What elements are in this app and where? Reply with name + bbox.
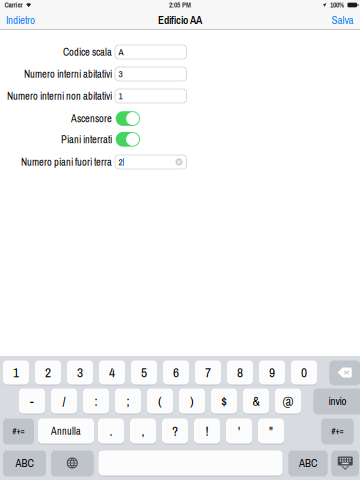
button[interactable]: Salva bbox=[323, 10, 360, 30]
button[interactable]: : bbox=[83, 388, 109, 414]
staticText: A bbox=[118, 46, 123, 58]
staticText: - bbox=[30, 392, 34, 410]
staticText: 9 bbox=[269, 363, 275, 381]
staticText: , bbox=[141, 422, 144, 440]
button[interactable] bbox=[98, 450, 282, 476]
button[interactable]: Indietro bbox=[0, 10, 43, 30]
staticText: Numero interni abitativi bbox=[24, 67, 112, 81]
staticText: invio bbox=[328, 394, 346, 408]
button[interactable]: 0 bbox=[291, 360, 317, 385]
button[interactable]: invio bbox=[313, 388, 360, 414]
staticText: 4 bbox=[109, 363, 115, 381]
staticText: Indietro bbox=[6, 13, 35, 27]
button[interactable]: ; bbox=[115, 388, 141, 414]
staticText: ! bbox=[205, 422, 208, 440]
staticText: 1 bbox=[13, 363, 19, 381]
button[interactable]: & bbox=[243, 388, 269, 414]
staticText: Edificio AA bbox=[158, 13, 202, 27]
staticText: ( bbox=[158, 392, 162, 410]
button[interactable]: 9 bbox=[259, 360, 285, 385]
staticText: #+= bbox=[331, 425, 343, 437]
button[interactable]: ( bbox=[147, 388, 173, 414]
button[interactable]: 2 bbox=[35, 360, 61, 385]
staticText: 100% bbox=[330, 0, 344, 10]
button[interactable]: 7 bbox=[195, 360, 221, 385]
staticText: / bbox=[62, 392, 65, 410]
staticText: ) bbox=[190, 392, 194, 410]
staticText: 1 bbox=[118, 90, 122, 102]
button[interactable]: Ascensore bbox=[116, 111, 140, 126]
button[interactable]: 6 bbox=[163, 360, 189, 385]
staticText: ABC bbox=[15, 456, 33, 470]
button[interactable]: @ bbox=[275, 388, 301, 414]
button[interactable]: 4 bbox=[99, 360, 125, 385]
button[interactable]: 1 bbox=[3, 360, 29, 385]
button[interactable]: 8 bbox=[227, 360, 253, 385]
staticText: ; bbox=[126, 392, 129, 410]
button[interactable]: Next keyboard bbox=[51, 450, 93, 476]
button[interactable]: ' bbox=[226, 418, 252, 444]
staticText: Codice scala bbox=[63, 45, 112, 59]
button[interactable]: Annulla bbox=[38, 418, 94, 444]
button[interactable]: $ bbox=[211, 388, 237, 414]
button[interactable]: Piani interrati bbox=[116, 132, 140, 147]
button[interactable]: - bbox=[19, 388, 45, 414]
staticText: : bbox=[94, 392, 97, 410]
button[interactable]: / bbox=[51, 388, 77, 414]
button[interactable]: ABC bbox=[288, 450, 327, 476]
button[interactable]: ? bbox=[162, 418, 188, 444]
staticText: Annulla bbox=[51, 424, 81, 438]
staticText: & bbox=[252, 392, 259, 410]
staticText: . bbox=[109, 422, 112, 440]
staticText: 6 bbox=[173, 363, 179, 381]
button[interactable]: ) bbox=[179, 388, 205, 414]
staticText: 3 bbox=[77, 363, 83, 381]
staticText: 2 bbox=[45, 363, 51, 381]
button[interactable]: . bbox=[98, 418, 124, 444]
button[interactable]: 3 bbox=[67, 360, 93, 385]
staticText: 8 bbox=[237, 363, 243, 381]
staticText: 2:05 PM bbox=[169, 0, 191, 10]
staticText: Salva bbox=[331, 13, 353, 27]
staticText: ' bbox=[238, 422, 240, 440]
button[interactable]: #+= bbox=[3, 418, 34, 444]
staticText: 3 bbox=[118, 68, 122, 80]
staticText: Carrier bbox=[4, 0, 22, 10]
staticText: 2 bbox=[118, 156, 122, 168]
button[interactable]: " bbox=[258, 418, 284, 444]
staticText: Numero piani fuori terra bbox=[21, 155, 112, 169]
staticText: Numero interni non abitativi bbox=[7, 89, 112, 103]
button[interactable]: #+= bbox=[321, 418, 353, 444]
staticText: #+= bbox=[12, 425, 24, 437]
staticText: @ bbox=[282, 392, 293, 410]
button[interactable]: ABC bbox=[3, 450, 46, 476]
staticText: $ bbox=[221, 392, 227, 410]
staticText: ? bbox=[172, 422, 178, 440]
button[interactable]: Delete bbox=[329, 360, 360, 385]
button[interactable]: , bbox=[130, 418, 156, 444]
staticText: 5 bbox=[141, 363, 147, 381]
staticText: ABC bbox=[299, 456, 317, 470]
staticText: 7 bbox=[205, 363, 211, 381]
staticText: " bbox=[269, 422, 273, 440]
button[interactable]: 5 bbox=[131, 360, 157, 385]
staticText: 0 bbox=[301, 363, 307, 381]
button[interactable]: Hide keyboard bbox=[331, 450, 359, 476]
staticText: Ascensore bbox=[71, 111, 112, 125]
button[interactable]: ! bbox=[194, 418, 220, 444]
staticText: Piani interrati bbox=[61, 132, 112, 146]
